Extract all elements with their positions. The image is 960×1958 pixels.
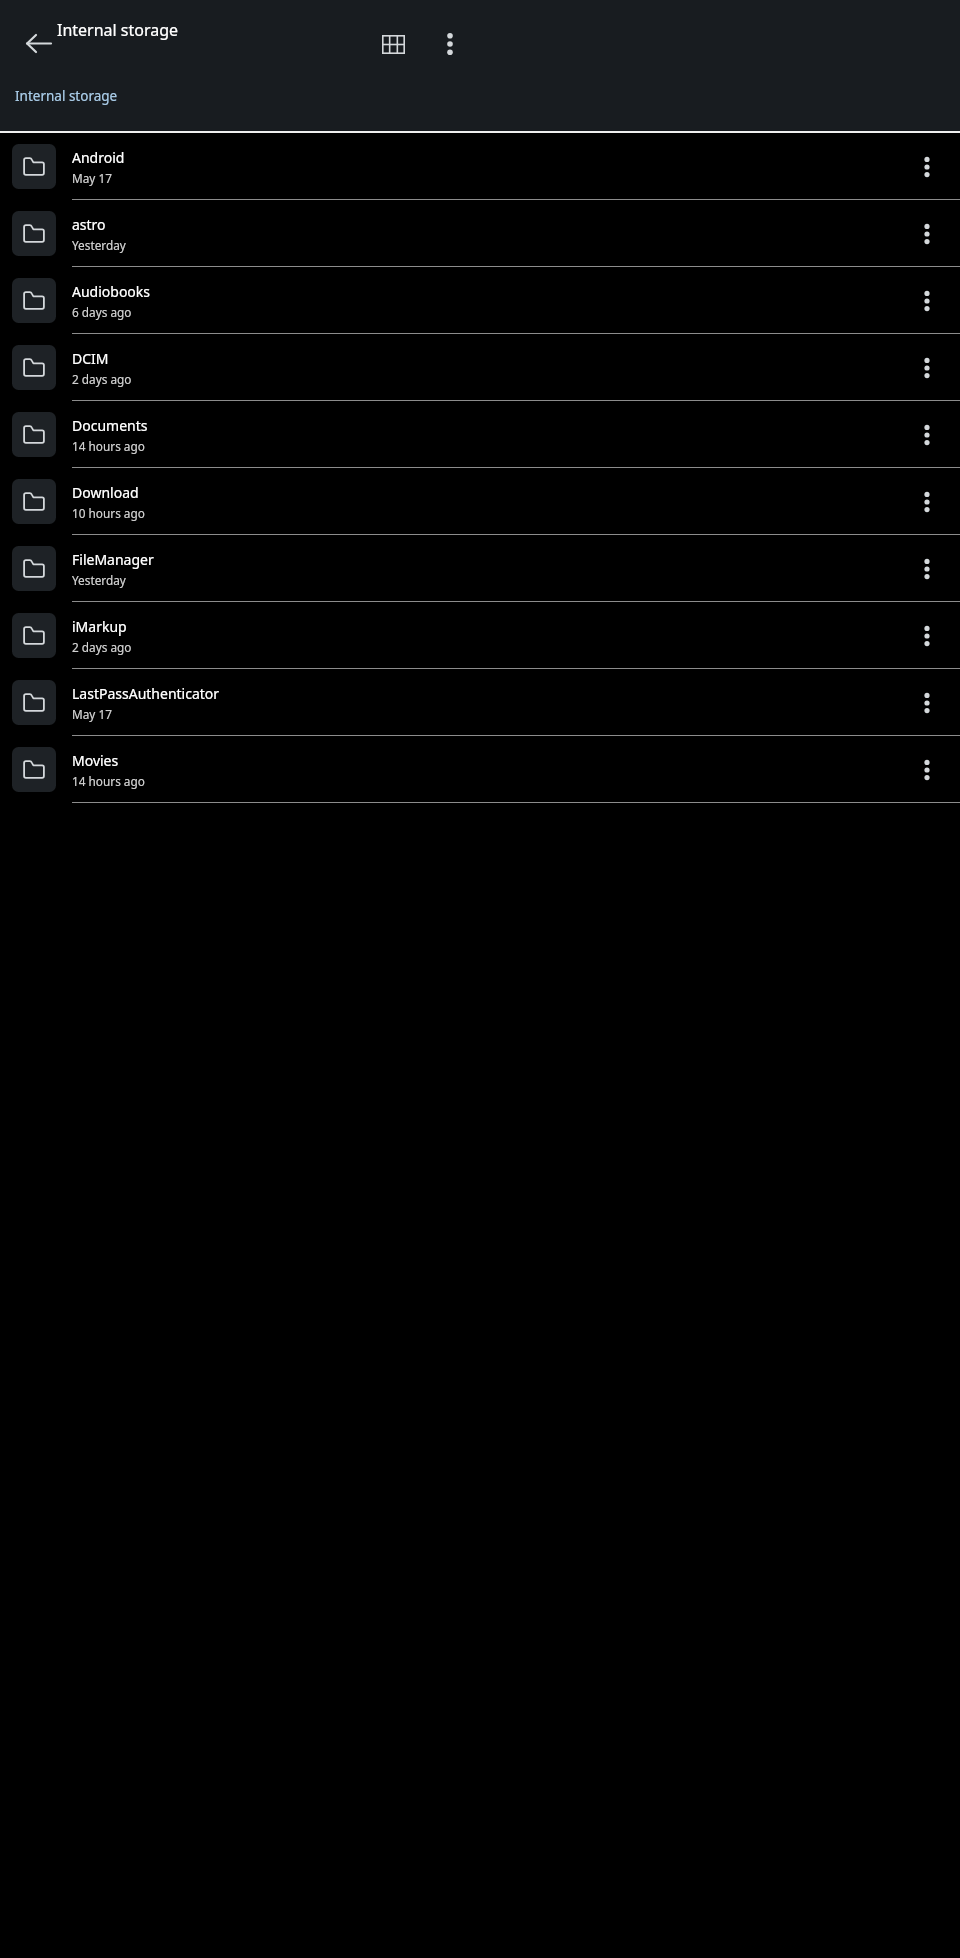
staticText: May 17: [72, 170, 112, 186]
button[interactable]: Documents: [0, 401, 960, 468]
button[interactable]: More options for iMarkup: [904, 613, 950, 659]
button[interactable]: Android: [0, 133, 960, 200]
button[interactable]: Audiobooks: [0, 267, 960, 334]
staticText: Android: [72, 148, 125, 167]
button[interactable]: iMarkup: [0, 602, 960, 669]
button[interactable]: More options for Android: [904, 144, 950, 190]
staticText: 14 hours ago: [72, 438, 145, 454]
staticText: 2 days ago: [72, 371, 132, 387]
staticText: 10 hours ago: [72, 505, 145, 521]
button[interactable]: More options for astro: [904, 211, 950, 257]
staticText: Audiobooks: [72, 282, 151, 301]
staticText: 2 days ago: [72, 639, 132, 655]
staticText: Download: [72, 483, 139, 502]
button[interactable]: More options for Download: [904, 479, 950, 525]
staticText: FileManager: [72, 550, 154, 569]
button[interactable]: Internal storage: [15, 87, 118, 105]
staticText: 14 hours ago: [72, 773, 145, 789]
button[interactable]: DCIM: [0, 334, 960, 401]
staticText: May 17: [72, 706, 112, 722]
staticText: 6 days ago: [72, 304, 132, 320]
staticText: Internal storage: [57, 19, 179, 41]
button[interactable]: LastPassAuthenticator: [0, 669, 960, 736]
button[interactable]: Download: [0, 468, 960, 535]
staticText: Documents: [72, 416, 148, 435]
button[interactable]: More options for Documents: [904, 412, 950, 458]
button[interactable]: More options for DCIM: [904, 345, 950, 391]
button[interactable]: astro: [0, 200, 960, 267]
staticText: astro: [72, 215, 106, 234]
staticText: iMarkup: [72, 617, 127, 636]
button[interactable]: More options for Movies: [904, 747, 950, 793]
staticText: Yesterday: [72, 237, 126, 253]
button[interactable]: More options for LastPassAuthenticator: [904, 680, 950, 726]
button[interactable]: Switch to grid view: [370, 21, 416, 67]
button[interactable]: FileManager: [0, 535, 960, 602]
button[interactable]: Movies: [0, 736, 960, 803]
button[interactable]: More options for Audiobooks: [904, 278, 950, 324]
button[interactable]: More options for FileManager: [904, 546, 950, 592]
staticText: LastPassAuthenticator: [72, 684, 220, 703]
staticText: Yesterday: [72, 572, 126, 588]
button[interactable]: More options: [427, 21, 473, 67]
button[interactable]: Back: [11, 16, 65, 70]
staticText: DCIM: [72, 349, 109, 368]
staticText: Movies: [72, 751, 119, 770]
